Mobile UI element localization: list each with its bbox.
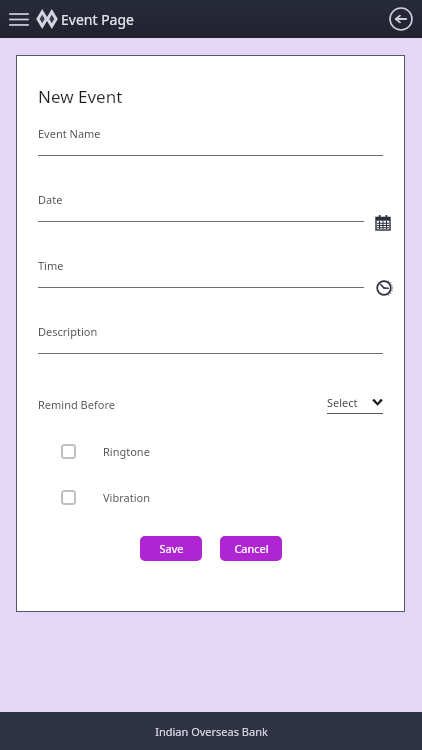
button[interactable]: Date <box>17 192 404 241</box>
button[interactable]: Cancel <box>220 536 282 561</box>
button[interactable]: Time <box>17 258 404 307</box>
button[interactable]: Pick date <box>374 213 392 231</box>
staticText: Date <box>38 192 63 207</box>
button[interactable]: Event Name <box>17 126 404 175</box>
staticText: Description <box>38 324 98 339</box>
button[interactable]: Menu <box>4 4 34 34</box>
staticText: Save <box>159 541 184 556</box>
staticText: Remind Before <box>38 397 115 412</box>
staticText: Vibration <box>103 490 150 505</box>
staticText: Cancel <box>234 541 269 556</box>
staticText: New Event <box>38 85 123 108</box>
staticText: Select <box>327 395 358 410</box>
staticText: Event Page <box>61 10 134 29</box>
button[interactable]: Back <box>386 4 416 34</box>
staticText: Indian Overseas Bank <box>155 724 268 739</box>
button[interactable]: Vibration <box>38 490 404 505</box>
staticText: Event Name <box>38 126 101 141</box>
button[interactable]: Description <box>17 324 404 373</box>
staticText: Time <box>38 258 64 273</box>
button[interactable]: Select <box>327 395 383 414</box>
button[interactable]: Pick time <box>374 278 394 298</box>
staticText: Ringtone <box>103 444 150 459</box>
button[interactable]: Ringtone <box>38 444 404 459</box>
button[interactable]: Save <box>140 536 202 561</box>
